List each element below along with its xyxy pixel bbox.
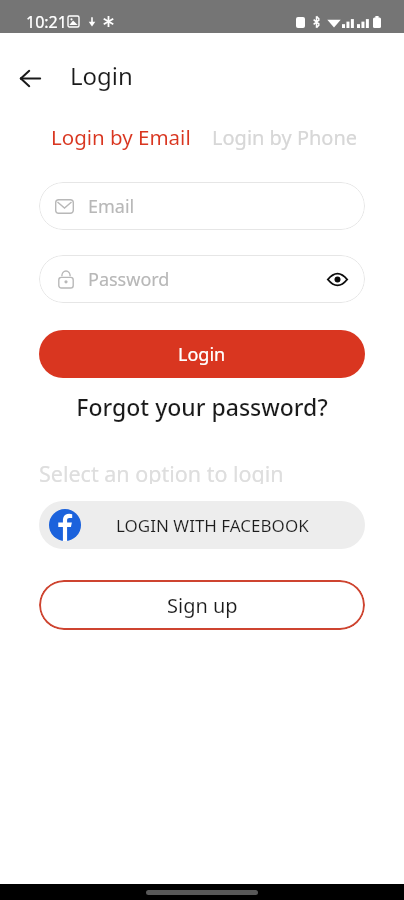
button[interactable]: Email: [39, 182, 365, 230]
button[interactable]: Login: [39, 330, 365, 378]
button[interactable]: Forgot your password?: [0, 388, 404, 424]
button[interactable]: Login by Email: [51, 123, 191, 151]
button[interactable]: Show password: [323, 265, 351, 293]
staticText: Sign up: [167, 592, 238, 619]
button[interactable]: Password: [39, 255, 365, 303]
staticText: 10:21: [26, 11, 67, 33]
button[interactable]: LOGIN WITH FACEBOOK: [39, 501, 365, 549]
staticText: Email: [88, 194, 135, 219]
staticText: Login by Phone: [212, 124, 358, 151]
staticText: LOGIN WITH FACEBOOK: [116, 514, 309, 537]
staticText: Password: [88, 267, 170, 292]
staticText: Select an option to login: [39, 459, 284, 484]
staticText: Login: [70, 59, 133, 92]
staticText: Login: [178, 342, 226, 367]
button[interactable]: Login by Phone: [212, 124, 358, 151]
button[interactable]: Back: [8, 53, 52, 97]
button[interactable]: Sign up: [39, 580, 365, 630]
staticText: Login by Email: [51, 123, 191, 151]
staticText: Forgot your password?: [76, 391, 328, 422]
